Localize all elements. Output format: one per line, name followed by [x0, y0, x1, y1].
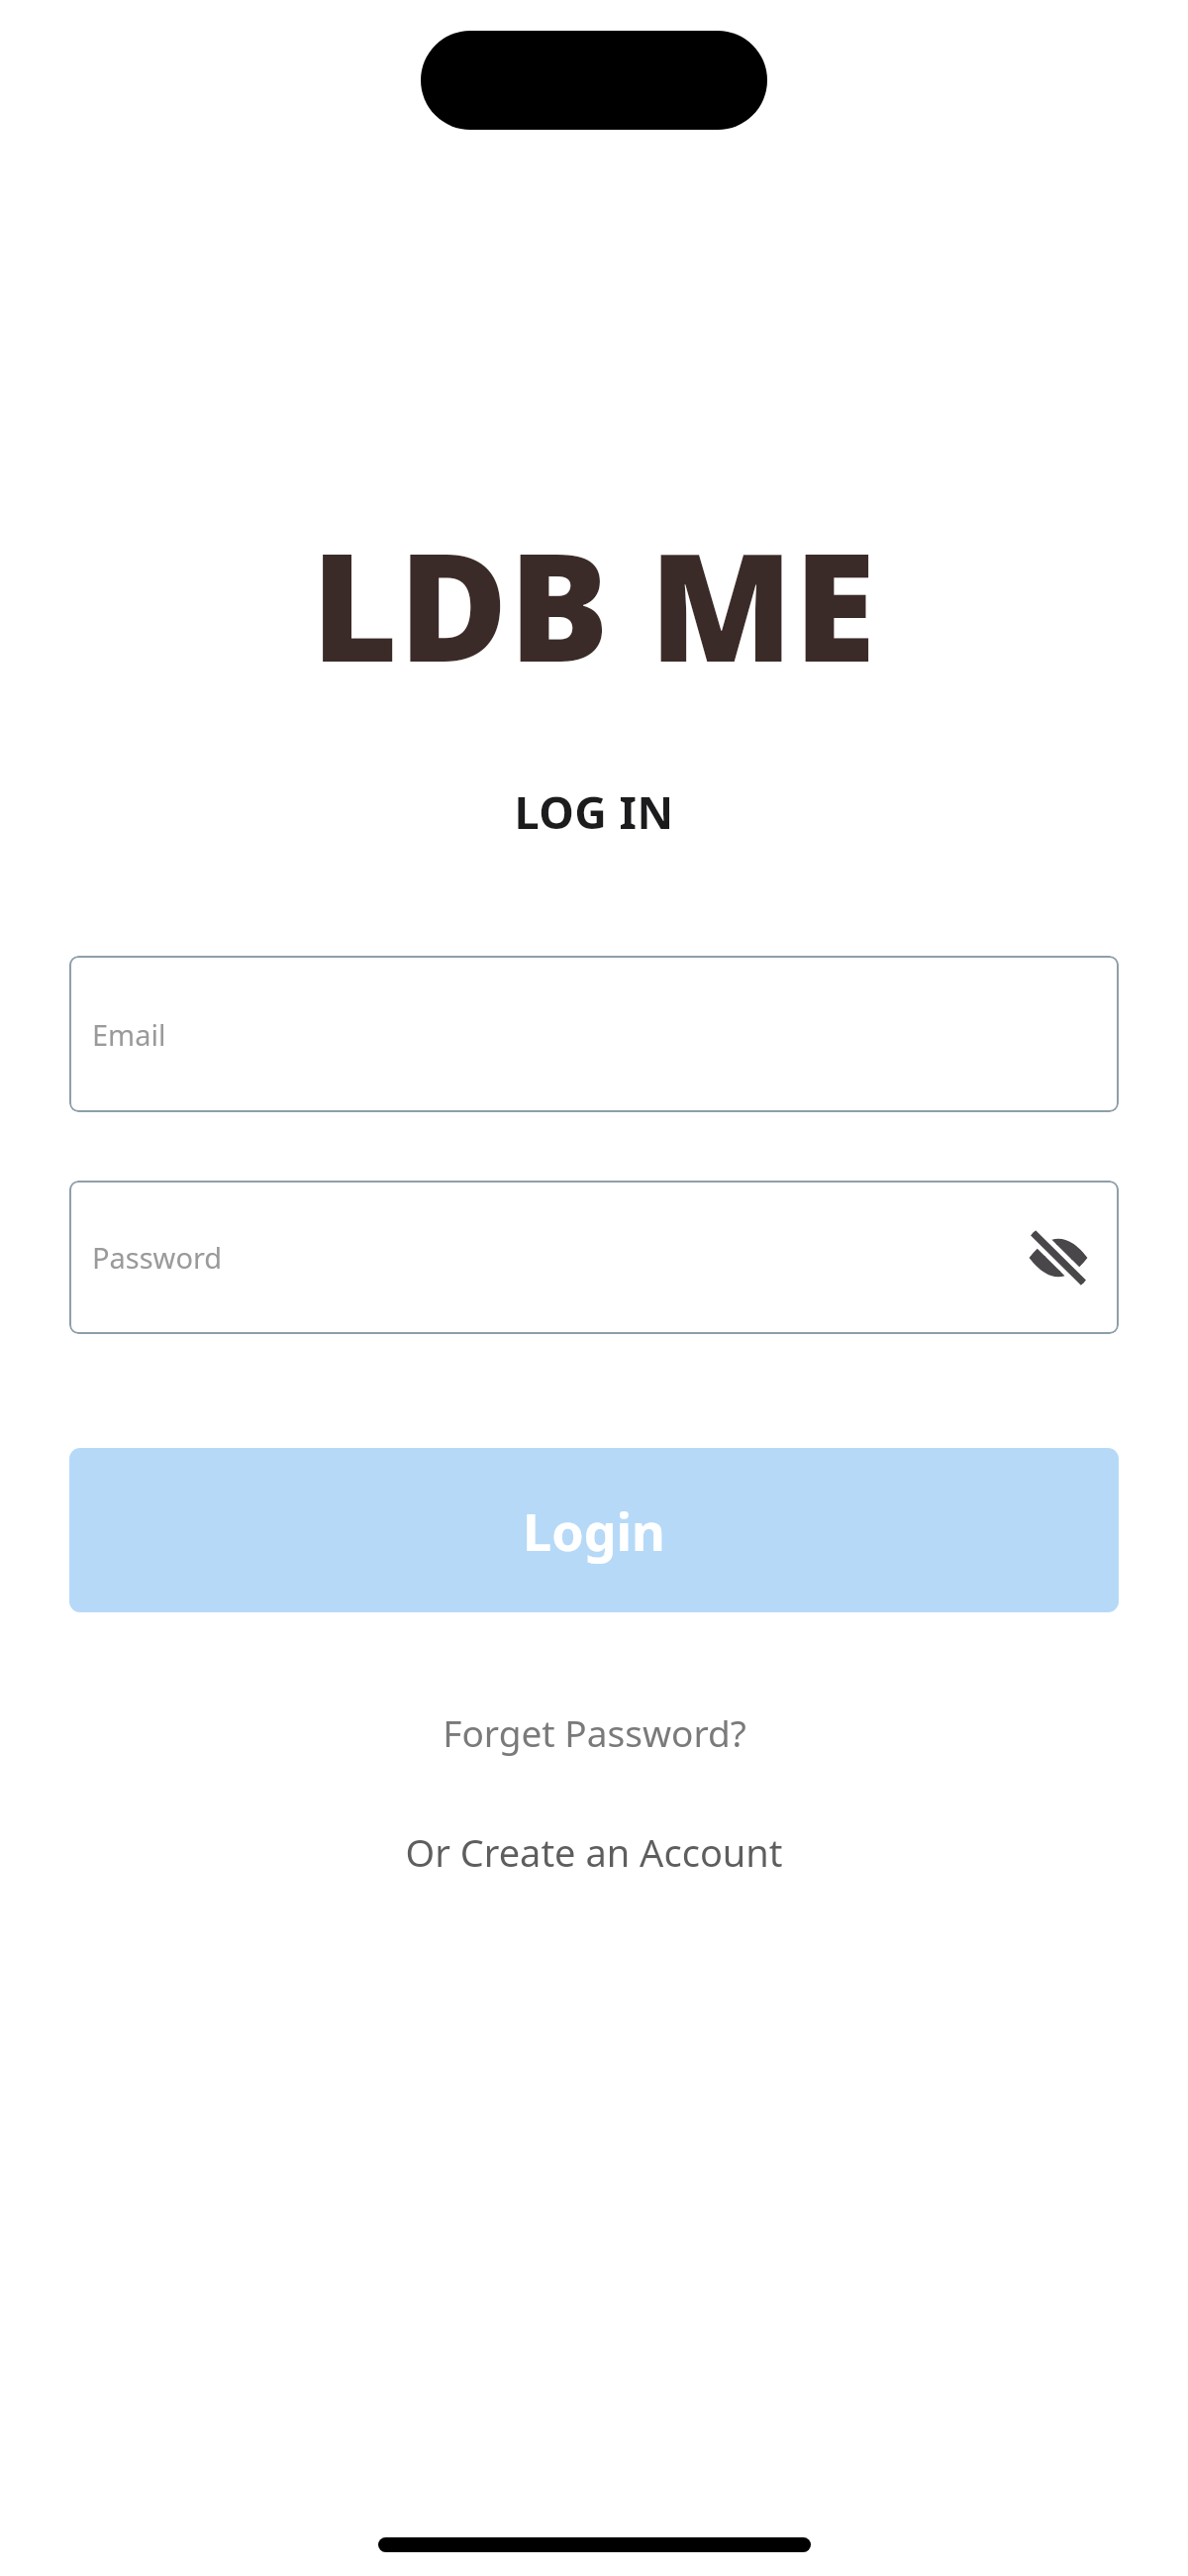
staticText: Email: [92, 1015, 166, 1054]
staticText: Or Create an Account: [405, 1826, 783, 1878]
staticText: LDB ME: [0, 503, 1188, 705]
staticText: Login: [523, 1495, 665, 1566]
button[interactable]: Or Create an Account: [389, 1820, 799, 1884]
button[interactable]: Password: [69, 1181, 1119, 1334]
staticText: Password: [92, 1238, 223, 1277]
button[interactable]: Email: [69, 956, 1119, 1112]
button[interactable]: Forget Password?: [427, 1701, 762, 1763]
button[interactable]: Show password: [1023, 1222, 1094, 1293]
staticText: Forget Password?: [443, 1707, 746, 1757]
staticText: LOG IN: [0, 781, 1188, 842]
button[interactable]: Login: [69, 1448, 1119, 1612]
